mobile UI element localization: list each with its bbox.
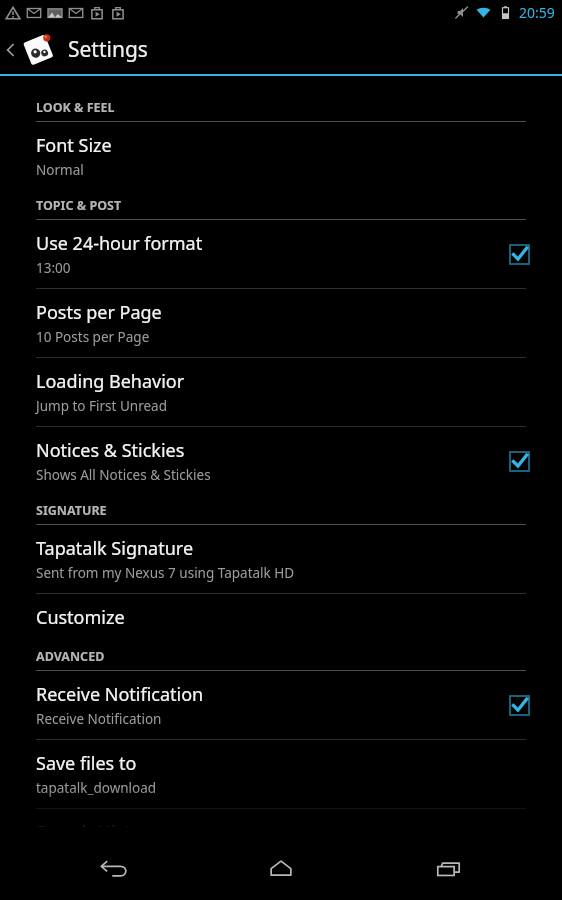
button[interactable]: Customize <box>0 594 562 641</box>
button[interactable]: Loading Behavior <box>0 358 562 426</box>
staticText: Sent from my Nexus 7 using Tapatalk HD <box>36 564 295 582</box>
staticText: Customize <box>36 605 125 630</box>
staticText: ADVANCED <box>36 648 105 665</box>
staticText: Jump to First Unread <box>36 397 167 415</box>
staticText: TOPIC & POST <box>36 197 122 214</box>
button[interactable]: Tapatalk Signature <box>0 525 562 593</box>
button[interactable]: Posts per Page <box>0 289 562 357</box>
staticText: Normal <box>36 161 84 179</box>
button[interactable]: Home <box>226 838 336 900</box>
staticText: Use 24-hour format <box>36 231 203 256</box>
button[interactable]: Notices & Stickies <box>0 427 562 495</box>
button[interactable]: Receive Notification <box>0 671 562 739</box>
staticText: Posts per Page <box>36 300 162 325</box>
button[interactable]: Font Size <box>0 122 562 190</box>
button[interactable]: Use 24-hour format <box>0 220 562 288</box>
staticText: Notices & Stickies <box>36 438 185 463</box>
button[interactable]: Recent apps <box>394 838 504 900</box>
button[interactable]: Use 24-hour format checkbox, checked <box>504 239 534 269</box>
staticText: Loading Behavior <box>36 369 185 394</box>
button[interactable]: Receive Notification checkbox, checked <box>504 690 534 720</box>
staticText: SIGNATURE <box>36 502 107 519</box>
staticText: 10 Posts per Page <box>36 328 150 346</box>
staticText: Save files to <box>36 751 137 776</box>
button[interactable]: Back <box>58 838 168 900</box>
staticText: tapatalk_download <box>36 779 157 797</box>
button[interactable]: Navigate up - Settings <box>0 25 562 74</box>
staticText: Settings <box>68 35 148 64</box>
staticText: Font Size <box>36 133 112 158</box>
staticText: Receive Notification <box>36 710 162 728</box>
button[interactable]: Notices & Stickies checkbox, checked <box>504 446 534 476</box>
staticText: Receive Notification <box>36 682 204 707</box>
staticText: LOOK & FEEL <box>36 99 115 116</box>
staticText: 20:59 <box>519 3 555 22</box>
staticText: Tapatalk Signature <box>36 536 194 561</box>
staticText: 13:00 <box>36 259 71 277</box>
staticText: Shows All Notices & Stickies <box>36 466 211 484</box>
button[interactable]: Save files to <box>0 740 562 808</box>
staticText: Search History <box>36 820 159 827</box>
